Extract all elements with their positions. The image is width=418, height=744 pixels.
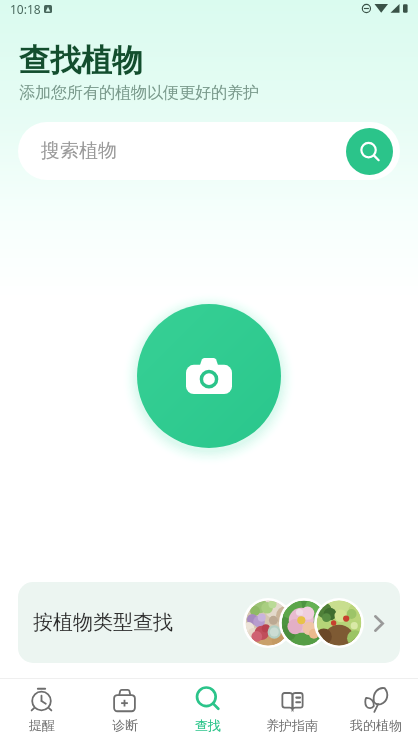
staticText: 添加您所有的植物以便更好的养护 xyxy=(19,83,259,103)
button[interactable]: Identify plant with camera xyxy=(137,304,281,448)
button[interactable]: 诊断 xyxy=(83,679,166,744)
button[interactable]: 提醒 xyxy=(0,679,83,744)
staticText: 诊断 xyxy=(112,717,138,733)
staticText: 我的植物 xyxy=(350,717,402,733)
staticText: 10:18 xyxy=(10,1,41,17)
button[interactable]: 我的植物 xyxy=(334,679,418,744)
button[interactable]: 查找 xyxy=(166,679,250,744)
button[interactable]: 养护指南 xyxy=(250,679,334,744)
button[interactable]: 搜索植物 xyxy=(18,122,400,180)
staticText: 查找 xyxy=(195,717,221,733)
button[interactable]: Search xyxy=(346,128,393,175)
staticText: 查找植物 xyxy=(19,41,143,80)
staticText: 养护指南 xyxy=(266,717,318,733)
staticText: 按植物类型查找 xyxy=(33,610,173,635)
staticText: 提醒 xyxy=(29,717,55,733)
staticText: 搜索植物 xyxy=(41,139,117,163)
button[interactable]: 按植物类型查找 xyxy=(18,582,400,663)
